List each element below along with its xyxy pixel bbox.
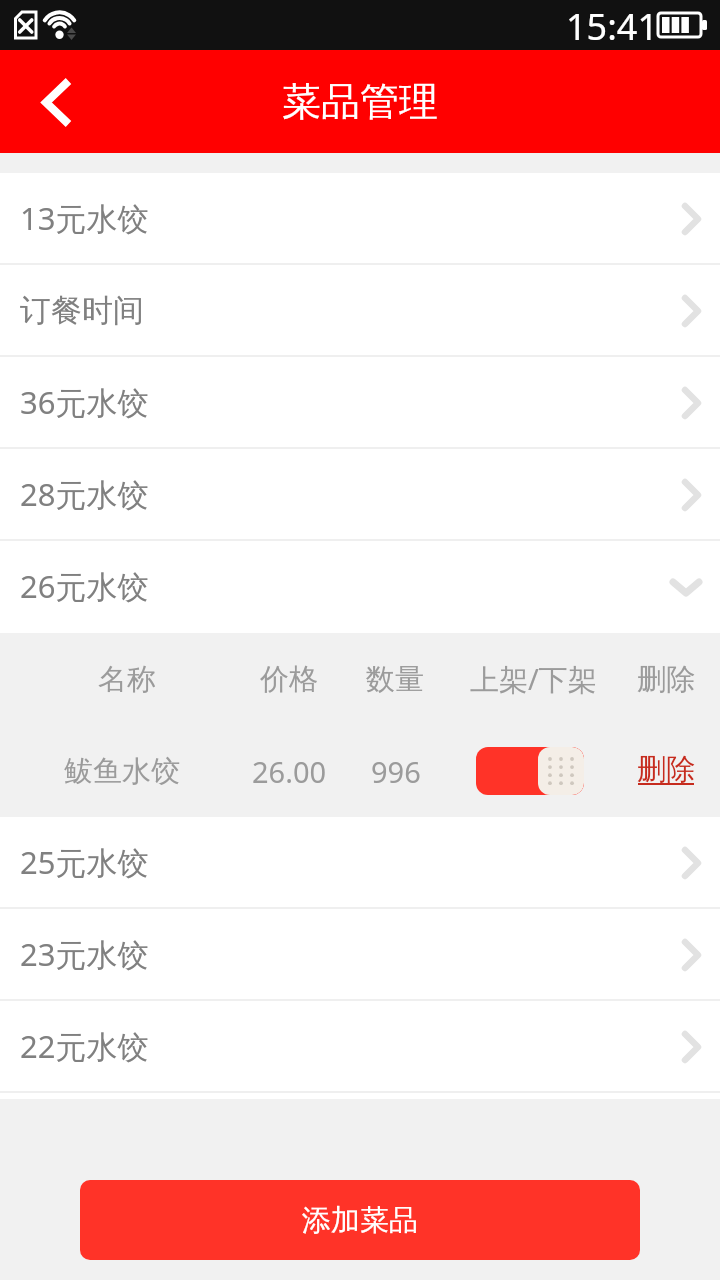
staticText: 23元水饺	[20, 933, 149, 975]
button[interactable]: 23元水饺	[0, 909, 720, 1001]
staticText: 15:41	[566, 2, 659, 51]
staticText: 25元水饺	[20, 841, 149, 883]
staticText: 996	[371, 752, 421, 791]
button[interactable]: 删除	[607, 725, 720, 817]
staticText: 36元水饺	[20, 381, 149, 423]
staticText: 13元水饺	[20, 197, 149, 239]
button[interactable]: Toggle on sale	[476, 747, 584, 795]
button[interactable]: 22元水饺	[0, 1001, 720, 1093]
staticText: 26.00	[252, 752, 327, 791]
button[interactable]: 25元水饺	[0, 817, 720, 909]
staticText: 上架/下架	[470, 659, 597, 699]
button[interactable]: 28元水饺	[0, 449, 720, 541]
button[interactable]: 13元水饺	[0, 173, 720, 265]
staticText: 价格	[260, 661, 318, 698]
button[interactable]: 26元水饺	[0, 541, 720, 633]
staticText: 鲅鱼水饺	[64, 753, 180, 790]
button[interactable]: 订餐时间	[0, 265, 720, 357]
staticText: 名称	[98, 661, 156, 698]
staticText: 数量	[366, 661, 424, 698]
staticText: 删除	[637, 751, 695, 788]
staticText: 26元水饺	[20, 565, 149, 607]
button[interactable]: 36元水饺	[0, 357, 720, 449]
staticText: 22元水饺	[20, 1025, 149, 1067]
staticText: 菜品管理	[282, 77, 438, 126]
staticText: 28元水饺	[20, 473, 149, 515]
button[interactable]: 添加菜品	[80, 1180, 640, 1260]
button[interactable]: Back	[0, 57, 90, 147]
staticText: 添加菜品	[302, 1202, 418, 1239]
staticText: 删除	[637, 661, 695, 698]
staticText: 订餐时间	[20, 291, 144, 330]
